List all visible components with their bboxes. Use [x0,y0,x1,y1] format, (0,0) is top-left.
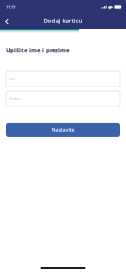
staticText: Upišite ime i prezime [6,46,69,54]
button[interactable]: Nastavite [6,123,120,137]
staticText: Dodaj karticu [43,17,82,24]
button[interactable]: Back [1,15,13,28]
button[interactable]: Prezime [6,91,120,107]
staticText: Prezime [9,97,21,101]
staticText: 11:19 [6,4,15,10]
staticText: Ime [9,77,15,81]
button[interactable]: Ime [6,71,120,87]
staticText: Nastavite [51,127,74,133]
